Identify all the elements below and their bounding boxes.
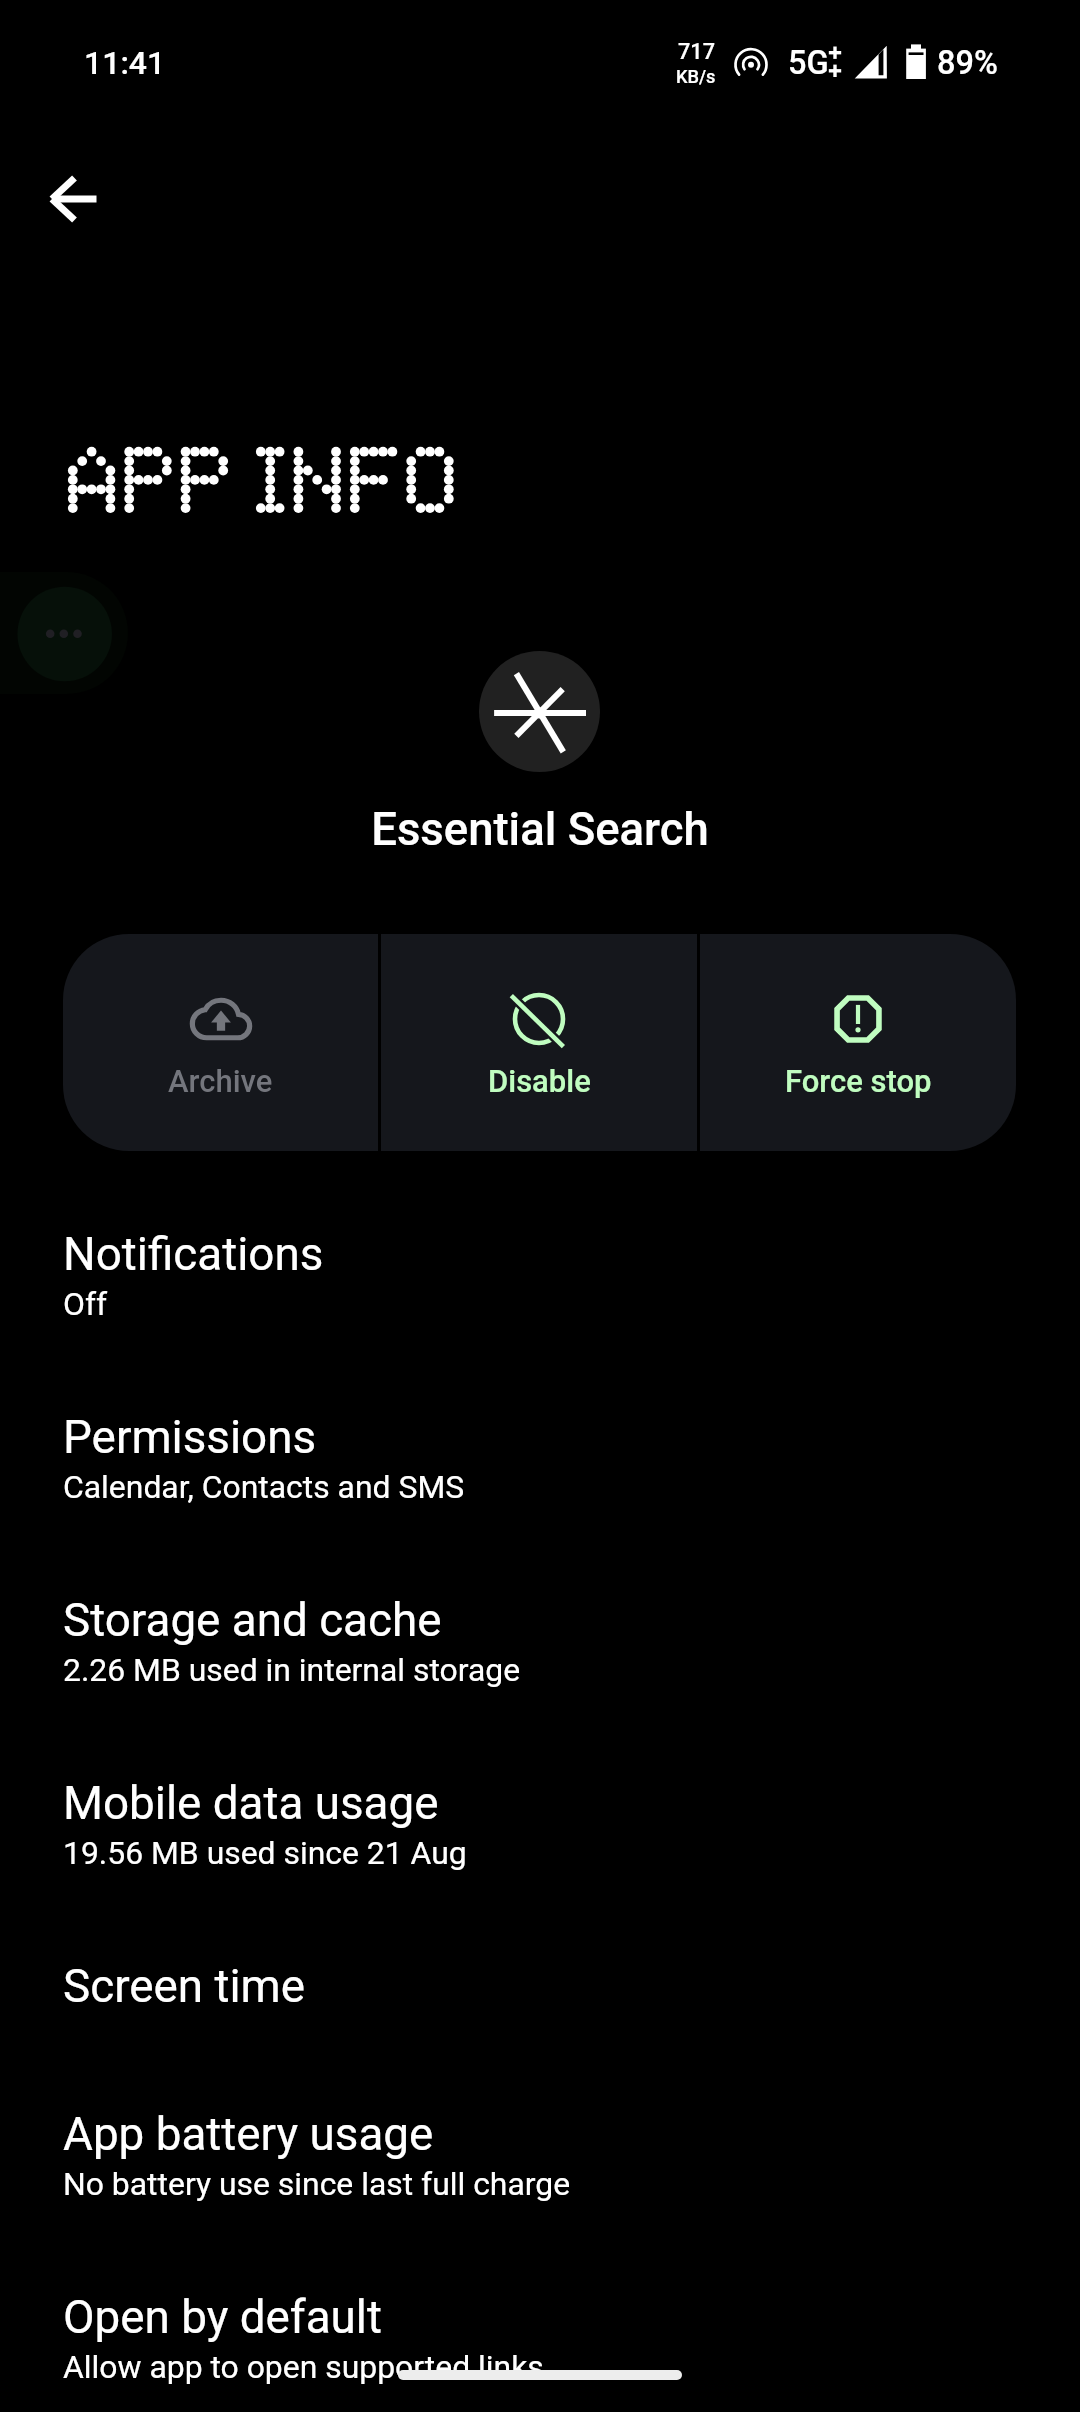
staticText: App battery usage: [63, 2108, 434, 2162]
staticText: 89%: [937, 44, 998, 82]
button[interactable]: Notifications: [0, 1202, 1080, 1385]
staticText: Essential Search: [0, 803, 1080, 856]
button[interactable]: Permissions: [0, 1385, 1080, 1568]
staticText: KB/s: [676, 66, 716, 87]
button[interactable]: Storage and cache: [0, 1568, 1080, 1751]
staticText: 11:41: [84, 44, 166, 82]
button[interactable]: Back: [27, 151, 123, 247]
staticText: Open by default: [63, 2291, 382, 2345]
staticText: Screen time: [63, 1960, 306, 2014]
staticText: 717: [678, 39, 715, 64]
staticText: No battery use since last full charge: [63, 2165, 571, 2202]
staticText: Storage and cache: [63, 1594, 442, 1648]
staticText: 2.26 MB used in internal storage: [63, 1651, 521, 1688]
staticText: Mobile data usage: [63, 1777, 439, 1831]
button[interactable]: Disable: [381, 934, 697, 1151]
staticText: Off: [63, 1285, 108, 1322]
staticText: 19.56 MB used since 21 Aug: [63, 1834, 467, 1871]
button[interactable]: More options: [0, 572, 128, 694]
staticText: Notifications: [63, 1228, 324, 1282]
staticText: 5G: [788, 44, 829, 82]
button[interactable]: Screen time: [0, 1934, 1080, 2082]
button[interactable]: Open by default: [0, 2265, 1080, 2412]
staticText: Archive: [168, 1063, 273, 1099]
staticText: Calendar, Contacts and SMS: [63, 1468, 465, 1505]
staticText: Permissions: [63, 1411, 317, 1465]
button[interactable]: Archive: [63, 934, 378, 1151]
button[interactable]: App battery usage: [0, 2082, 1080, 2265]
button[interactable]: Mobile data usage: [0, 1751, 1080, 1934]
staticText: Allow app to open supported links: [63, 2348, 544, 2385]
staticText: Disable: [488, 1063, 591, 1099]
staticText: Force stop: [785, 1063, 932, 1099]
button[interactable]: Force stop: [700, 934, 1016, 1151]
